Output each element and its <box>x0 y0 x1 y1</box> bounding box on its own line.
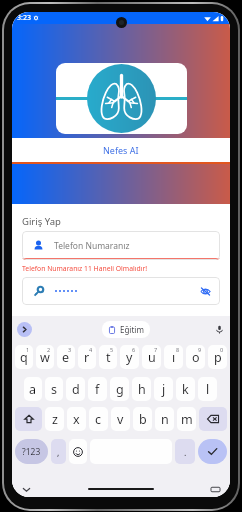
staticText: 4 <box>89 346 93 353</box>
button[interactable]: e <box>57 345 75 369</box>
button[interactable]: ı <box>164 345 183 369</box>
button[interactable]: q <box>15 345 33 369</box>
button[interactable]: o <box>186 345 205 369</box>
button[interactable]: Emoji <box>69 439 87 464</box>
button[interactable]: h <box>132 377 151 401</box>
staticText: f <box>95 381 100 398</box>
staticText: p <box>214 349 222 366</box>
staticText: e <box>62 349 70 366</box>
button[interactable]: u <box>142 345 161 369</box>
button[interactable]: ?123 <box>15 439 48 464</box>
button[interactable]: a <box>24 377 42 401</box>
button[interactable]: w <box>36 345 54 369</box>
staticText: l <box>206 381 210 398</box>
button[interactable]: , <box>51 439 66 464</box>
button[interactable]: x <box>67 407 86 431</box>
staticText: 0 <box>220 346 224 353</box>
staticText: u <box>148 349 156 366</box>
button[interactable]: Show password <box>22 277 220 305</box>
button[interactable]: More suggestions <box>17 322 32 337</box>
button[interactable]: c <box>89 407 108 431</box>
staticText: ı <box>172 349 176 366</box>
staticText: d <box>72 381 80 398</box>
staticText: Telefon Numaranız 11 Haneli Olmalıdır! <box>22 264 148 273</box>
staticText: 8 <box>176 346 180 353</box>
staticText: c <box>95 411 102 428</box>
button[interactable]: k <box>176 377 195 401</box>
button[interactable]: p <box>208 345 227 369</box>
staticText: 1 <box>26 346 30 353</box>
button[interactable]: v <box>111 407 130 431</box>
staticText: y <box>126 349 133 366</box>
staticText: b <box>139 411 147 428</box>
other: Hide keyboard <box>22 485 31 494</box>
staticText: v <box>117 411 124 428</box>
staticText: 5 <box>110 346 114 353</box>
button[interactable]: s <box>45 377 63 401</box>
staticText: r <box>84 349 90 366</box>
button[interactable]: Backspace <box>199 407 227 431</box>
button[interactable]: m <box>177 407 196 431</box>
button[interactable]: Enter <box>198 439 227 464</box>
staticText: j <box>162 381 166 398</box>
staticText: h <box>138 381 146 398</box>
button[interactable]: . <box>175 439 195 464</box>
staticText: q <box>20 349 28 366</box>
staticText: 2 <box>47 346 51 353</box>
button[interactable]: f <box>88 377 107 401</box>
button[interactable]: t <box>99 345 117 369</box>
staticText: . <box>184 446 187 458</box>
staticText: 7 <box>154 346 158 353</box>
other: Switch keyboard <box>211 485 220 494</box>
staticText: o <box>192 349 200 366</box>
button[interactable]: Telefon Numaranız <box>22 231 220 260</box>
staticText: w <box>40 349 50 366</box>
staticText: z <box>52 411 58 428</box>
other: Voice input <box>215 325 224 334</box>
button[interactable]: d <box>66 377 85 401</box>
staticText: Eğitim <box>120 324 144 335</box>
staticText: m <box>181 411 193 428</box>
staticText: k <box>182 381 189 398</box>
staticText: Telefon Numaranız <box>54 240 130 252</box>
button[interactable]: n <box>155 407 174 431</box>
button[interactable]: r <box>78 345 96 369</box>
staticText: g <box>116 381 124 398</box>
staticText: ?123 <box>22 446 41 458</box>
button[interactable]: l <box>198 377 217 401</box>
staticText: a <box>29 381 37 398</box>
staticText: 3:23 <box>17 13 31 23</box>
staticText: , <box>57 446 60 458</box>
button[interactable]: Shift <box>15 407 42 431</box>
staticText: 9 <box>198 346 202 353</box>
other: Show password <box>200 286 211 297</box>
button[interactable]: j <box>154 377 173 401</box>
staticText: Nefes AI <box>103 144 139 156</box>
staticText: t <box>106 349 111 366</box>
button[interactable]: g <box>110 377 129 401</box>
staticText: 3 <box>68 346 72 353</box>
button[interactable]: y <box>120 345 139 369</box>
button[interactable]: Eğitim <box>108 324 144 335</box>
staticText: s <box>51 381 57 398</box>
button[interactable]: b <box>133 407 152 431</box>
staticText: Giriş Yap <box>22 215 61 228</box>
staticText: n <box>161 411 169 428</box>
button[interactable]: z <box>45 407 64 431</box>
staticText: 6 <box>132 346 136 353</box>
staticText: x <box>73 411 80 428</box>
